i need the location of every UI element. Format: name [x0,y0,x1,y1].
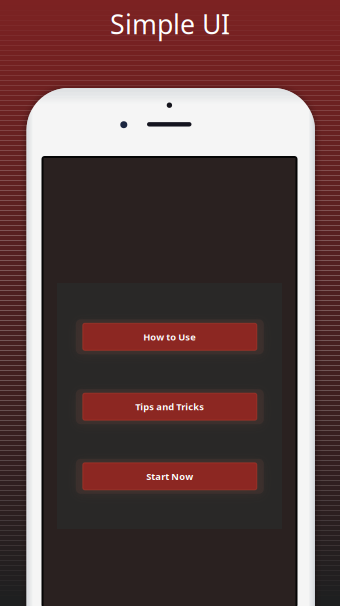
button[interactable]: Tips and Tricks [71,384,269,429]
button[interactable]: Start Now [71,454,269,499]
staticText: Simple UI [110,6,230,42]
button[interactable]: How to Use [71,314,269,359]
staticText: Start Now [146,470,193,482]
staticText: How to Use [143,331,196,343]
staticText: Tips and Tricks [135,400,204,413]
